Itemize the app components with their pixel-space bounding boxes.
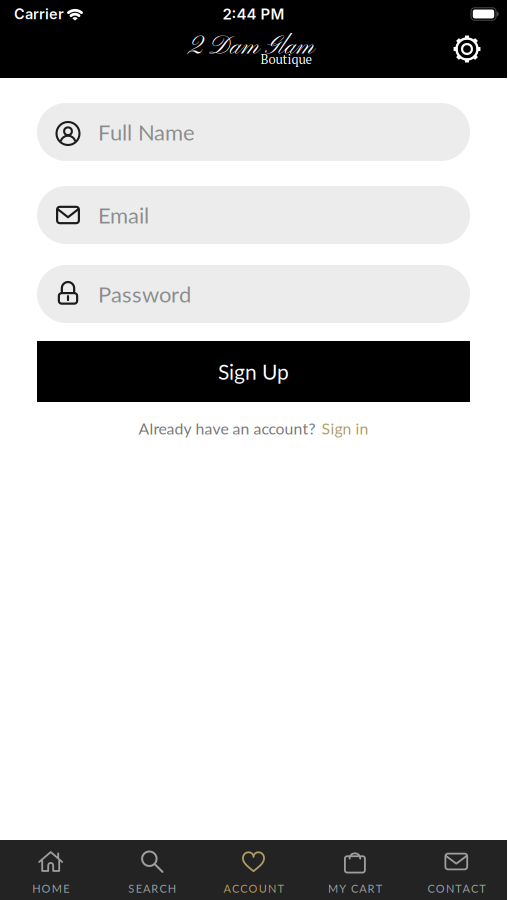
staticText: MY CART <box>328 882 382 895</box>
button[interactable]: ACCOUNT <box>203 840 304 900</box>
staticText: Email <box>98 202 149 228</box>
staticText: Boutique <box>260 51 312 68</box>
textField[interactable]: Email <box>98 202 470 228</box>
button[interactable]: Sign Up <box>37 341 470 402</box>
secureTextField[interactable]: Password <box>98 281 470 307</box>
button[interactable]: Settings <box>453 39 507 67</box>
button[interactable]: CONTACT <box>406 840 507 900</box>
staticText: Full Name <box>98 119 195 145</box>
staticText: Already have an account? <box>138 419 315 438</box>
textField[interactable]: Full Name <box>98 119 470 145</box>
staticText: CONTACT <box>427 882 485 895</box>
staticText: Carrier <box>14 5 64 23</box>
staticText: Sign in <box>321 419 368 438</box>
staticText: 2:44 PM <box>222 5 284 23</box>
button[interactable]: SEARCH <box>101 840 203 900</box>
staticText: 2 Dam Glam <box>187 31 314 64</box>
staticText: SEARCH <box>128 882 176 895</box>
button[interactable]: Sign in <box>321 419 368 438</box>
staticText: Password <box>98 281 191 307</box>
button[interactable]: MY CART <box>304 840 406 900</box>
staticText: HOME <box>32 882 69 895</box>
button[interactable]: HOME <box>0 840 101 900</box>
staticText: Sign Up <box>218 359 289 384</box>
staticText: ACCOUNT <box>224 882 283 895</box>
